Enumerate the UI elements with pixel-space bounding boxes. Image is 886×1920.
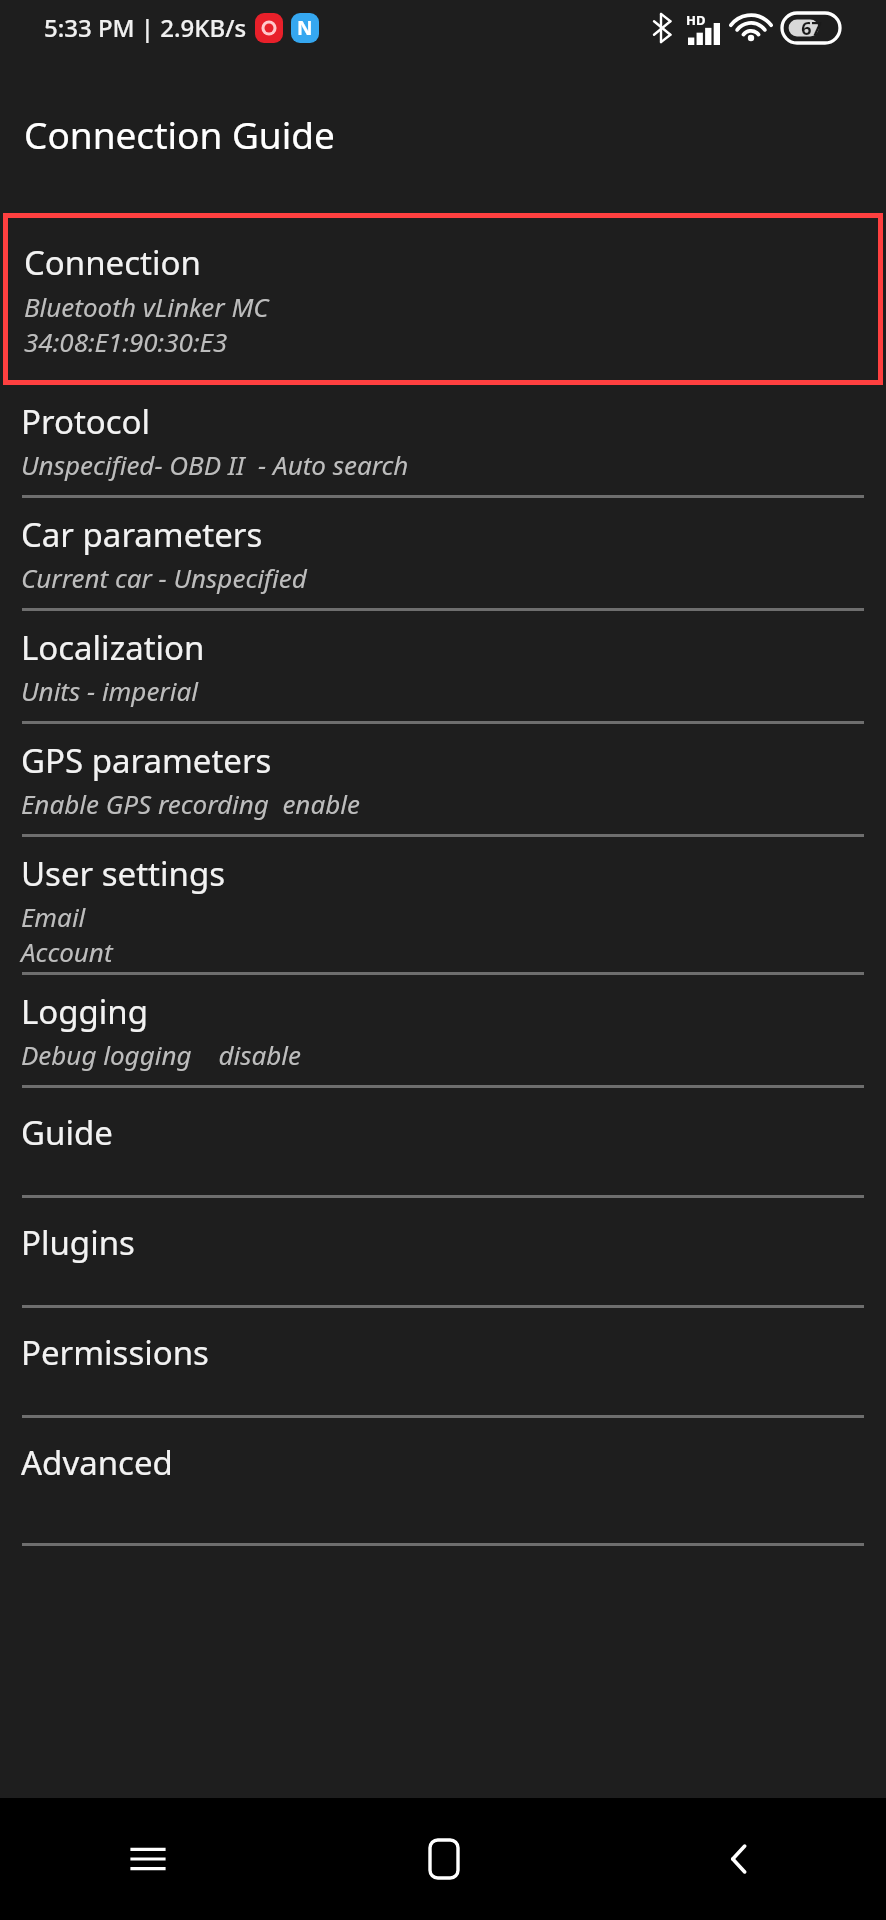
button[interactable]: GPS parameters	[0, 724, 886, 837]
staticText: 5:33 PM | 2.9KB/s	[44, 11, 247, 44]
staticText: GPS parameters	[21, 738, 272, 783]
button[interactable]: Guide	[0, 1088, 886, 1198]
staticText: Logging	[21, 989, 149, 1034]
staticText: Debug logging disable	[21, 1037, 302, 1072]
button[interactable]: Car parameters	[0, 498, 886, 611]
staticText: Connection	[24, 240, 201, 285]
button[interactable]: Back	[591, 1798, 886, 1920]
staticText: Current car - Unspecified	[21, 560, 307, 595]
staticText: Protocol	[21, 399, 151, 444]
staticText: Account	[21, 934, 113, 969]
staticText: Guide	[21, 1110, 113, 1155]
staticText: Units - imperial	[21, 673, 198, 708]
button[interactable]: Protocol	[0, 385, 886, 498]
button[interactable]: Logging	[0, 975, 886, 1088]
staticText: 34:08:E1:90:30:E3	[24, 324, 228, 359]
button[interactable]: Home	[296, 1798, 591, 1920]
staticText: Car parameters	[21, 512, 263, 557]
staticText: Advanced	[21, 1440, 173, 1485]
staticText: Plugins	[21, 1220, 135, 1265]
staticText: Localization	[21, 625, 205, 670]
staticText: User settings	[21, 851, 226, 896]
staticText: Bluetooth vLinker MC	[24, 289, 269, 324]
button[interactable]: Connection	[3, 213, 883, 385]
staticText: Unspecified- OBD II - Auto search	[21, 447, 409, 482]
button[interactable]: User settings	[0, 837, 886, 975]
button[interactable]: Permissions	[0, 1308, 886, 1418]
staticText: HD	[686, 11, 706, 29]
staticText: 67	[801, 16, 822, 41]
staticText: Permissions	[21, 1330, 209, 1375]
staticText: Connection Guide	[24, 109, 335, 159]
button[interactable]: Plugins	[0, 1198, 886, 1308]
button[interactable]: Advanced	[0, 1418, 886, 1546]
staticText: Enable GPS recording enable	[21, 786, 360, 821]
staticText: Email	[21, 899, 86, 934]
button[interactable]: Localization	[0, 611, 886, 724]
button[interactable]: Recent apps	[0, 1798, 296, 1920]
staticText: N	[297, 15, 313, 41]
